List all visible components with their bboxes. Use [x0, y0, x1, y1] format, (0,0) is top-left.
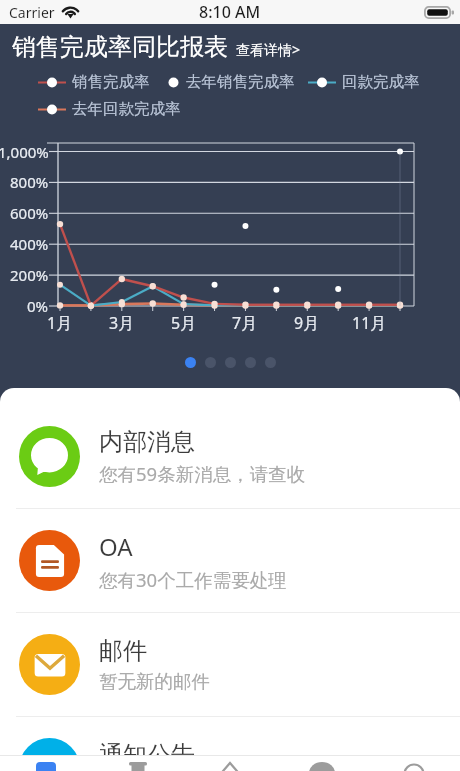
- staticText: OA: [99, 530, 133, 563]
- staticText: 销售完成率: [72, 72, 150, 92]
- staticText: 200%: [10, 265, 49, 285]
- staticText: 11月: [352, 312, 387, 334]
- staticText: 去年回款完成率: [72, 99, 181, 119]
- button[interactable]: 通知公告: [0, 717, 460, 771]
- staticText: 通知公告: [99, 740, 195, 770]
- staticText: 1月: [47, 312, 73, 334]
- staticText: 您有59条新消息，请查收: [99, 461, 306, 486]
- staticText: 9月: [294, 312, 320, 334]
- staticText: Carrier: [9, 3, 55, 22]
- staticText: 7月: [232, 312, 258, 334]
- staticText: 0%: [27, 296, 49, 316]
- staticText: 600%: [10, 203, 49, 223]
- button[interactable]: 内部消息: [0, 405, 460, 508]
- staticText: 暂无新的邮件: [99, 670, 210, 693]
- staticText: 800%: [10, 172, 49, 192]
- button[interactable]: 首页: [184, 756, 276, 771]
- staticText: 400%: [10, 234, 49, 254]
- staticText: 内部消息: [99, 427, 195, 457]
- staticText: 销售完成率同比报表: [12, 32, 228, 62]
- button[interactable]: 我的: [368, 756, 460, 771]
- button[interactable]: 消息: [0, 756, 92, 771]
- staticText: 8:10 AM: [199, 1, 261, 23]
- staticText: 回款完成率: [342, 72, 420, 92]
- staticText: 5月: [171, 312, 197, 334]
- staticText: 邮件: [99, 636, 147, 666]
- staticText: 您有30个工作需要处理: [99, 567, 287, 592]
- staticText: 3月: [109, 312, 135, 334]
- button[interactable]: OA: [0, 509, 460, 612]
- button[interactable]: 工作: [92, 756, 184, 771]
- staticText: 去年销售完成率: [186, 72, 295, 92]
- button[interactable]: 应用: [276, 756, 368, 771]
- staticText: 1,000%: [0, 142, 49, 162]
- button[interactable]: 查看详情>: [236, 40, 301, 62]
- button[interactable]: 邮件: [0, 613, 460, 716]
- staticText: 查看详情>: [236, 40, 301, 59]
